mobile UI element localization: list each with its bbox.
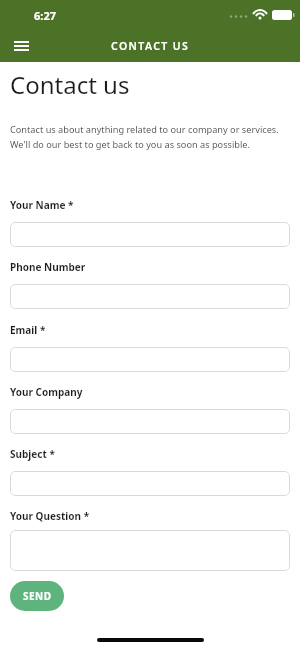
- staticText: Your Company: [10, 385, 83, 399]
- button[interactable]: [10, 284, 290, 309]
- button[interactable]: [10, 347, 290, 372]
- staticText: SEND: [23, 589, 52, 603]
- staticText: Email *: [10, 323, 46, 337]
- staticText: Your Question *: [10, 509, 90, 523]
- button[interactable]: [10, 530, 290, 571]
- button[interactable]: SEND: [10, 581, 64, 611]
- button[interactable]: [10, 222, 290, 247]
- staticText: 6:27: [34, 8, 56, 23]
- button[interactable]: [14, 41, 29, 51]
- button[interactable]: [10, 471, 290, 496]
- staticText: Contact us about anything related to our…: [10, 123, 279, 150]
- staticText: Contact us: [10, 68, 130, 101]
- staticText: CONTACT US: [111, 39, 190, 53]
- staticText: Subject *: [10, 447, 55, 461]
- staticText: Your Name *: [10, 198, 74, 212]
- staticText: Phone Number: [10, 260, 86, 274]
- button[interactable]: [10, 409, 290, 434]
